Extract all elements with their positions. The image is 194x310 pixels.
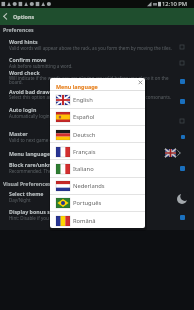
staticText: Português	[73, 199, 102, 207]
staticText: Recommended. The dictionary contains man…	[9, 168, 131, 174]
staticText: Italiano	[73, 165, 94, 173]
button[interactable]: Display bonus squares	[0, 206, 194, 223]
button[interactable]	[180, 61, 184, 65]
staticText: Deutsch	[73, 131, 96, 139]
staticText: Day/Night	[9, 197, 31, 203]
staticText: Preferences	[3, 26, 34, 33]
staticText: Français	[73, 148, 96, 156]
staticText: Română	[73, 217, 96, 225]
staticText: board.	[9, 79, 23, 85]
staticText: Ask before submitting a word.	[9, 63, 73, 69]
button[interactable]: Français	[50, 143, 145, 160]
button[interactable]: Menu language	[0, 148, 194, 159]
staticText: Word check	[9, 69, 40, 76]
staticText: Display bonus squares	[9, 208, 68, 215]
button[interactable]	[180, 166, 185, 171]
button[interactable]: Auto login	[0, 105, 194, 121]
button[interactable]: Confirm move	[0, 54, 194, 68]
staticText: Master	[9, 130, 28, 137]
staticText: Auto login	[9, 106, 37, 113]
button[interactable]: Italiano	[50, 160, 145, 177]
staticText: Avoid bad draws	[9, 88, 53, 95]
staticText: Options	[13, 13, 35, 20]
button[interactable]	[180, 215, 185, 220]
button[interactable]	[135, 78, 145, 88]
staticText: Select this option and you will avoid dr…	[9, 94, 172, 100]
button[interactable]	[180, 45, 184, 49]
button[interactable]: Word check	[0, 68, 194, 87]
staticText: Word hints	[9, 38, 38, 45]
staticText: Valid words will appear above the rack, …	[9, 45, 172, 51]
staticText: Nederlands	[73, 182, 105, 190]
button[interactable]: Master	[0, 128, 194, 145]
button[interactable]: Avoid bad draws	[0, 87, 194, 104]
button[interactable]: Block rare/unknown words	[0, 159, 194, 176]
staticText: Hint: Disable if you want a tougher game…	[9, 215, 97, 221]
staticText: Menu language	[9, 150, 51, 157]
staticText: Valid to next game only.	[9, 137, 60, 143]
button[interactable]: Word hints	[0, 36, 194, 53]
staticText: Select theme	[9, 190, 44, 197]
button[interactable]: Română	[50, 212, 145, 228]
button[interactable]	[181, 135, 185, 139]
button[interactable]: English	[50, 91, 145, 108]
staticText: Will indicate if the words you are playi…	[9, 75, 169, 81]
button[interactable]: Select theme	[0, 188, 194, 204]
staticText: 12:10 PM	[162, 0, 188, 8]
button[interactable]: Deutsch	[50, 126, 145, 143]
staticText: Block rare/unknown words	[9, 161, 81, 168]
staticText: Confirm move	[9, 56, 47, 63]
button[interactable]: Português	[50, 194, 145, 211]
button[interactable]	[180, 119, 184, 123]
staticText: Visual Preferences	[3, 180, 51, 187]
staticText: Menu language	[56, 83, 98, 90]
staticText: Español	[73, 113, 95, 121]
button[interactable]: Español	[50, 108, 145, 125]
button[interactable]	[180, 99, 185, 104]
button[interactable]: Nederlands	[50, 177, 145, 194]
button[interactable]	[180, 79, 185, 84]
button[interactable]	[0, 8, 194, 25]
staticText: English	[73, 96, 93, 104]
staticText: Automatically login when the application…	[9, 113, 110, 119]
